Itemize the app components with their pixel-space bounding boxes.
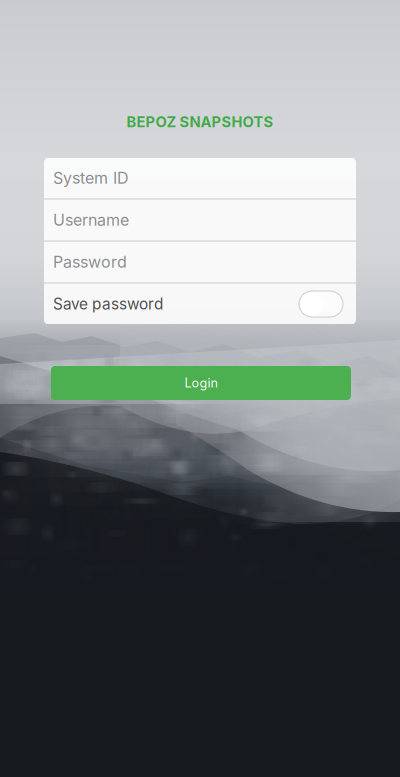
staticText: System ID [53,168,129,188]
button[interactable]: Save password [299,291,343,317]
button[interactable]: Login [51,366,351,400]
staticText: Login [184,375,217,391]
staticText: Password [53,252,127,272]
staticText: BEPOZ SNAPSHOTS [126,113,273,131]
button[interactable]: Username [44,199,356,240]
staticText: Save password [53,295,163,313]
button[interactable]: Password [44,241,356,282]
button[interactable]: System ID [44,157,356,198]
staticText: Username [53,210,129,230]
